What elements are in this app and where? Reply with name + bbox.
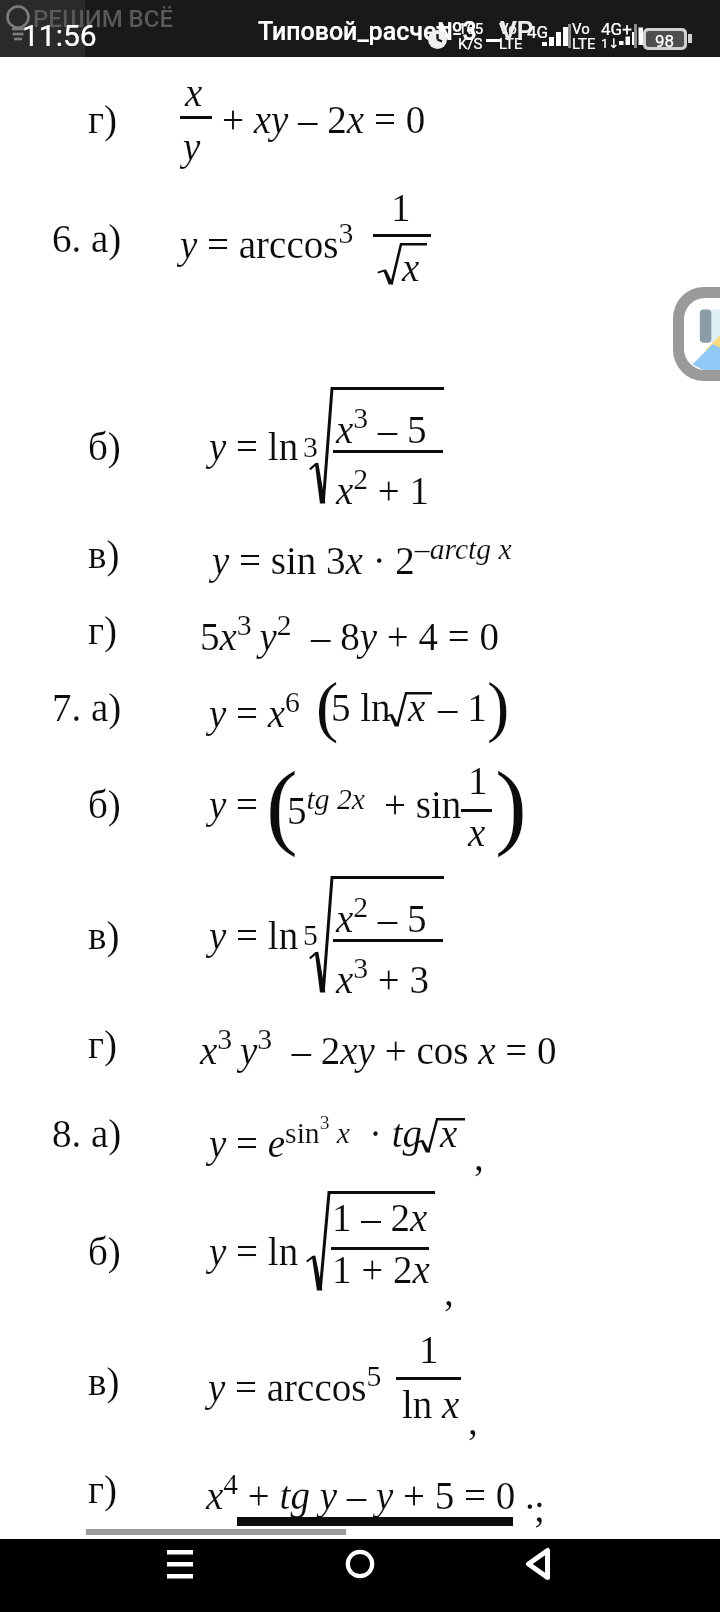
button[interactable]: Home <box>320 1539 400 1612</box>
staticText: 3 <box>303 431 318 464</box>
staticText: 11:56 <box>22 18 97 53</box>
staticText: в) <box>88 1360 120 1403</box>
staticText: , <box>444 1270 454 1313</box>
staticText: , <box>468 1399 478 1442</box>
staticText: г) <box>88 98 117 141</box>
staticText: + sin <box>384 783 462 826</box>
staticText: 5 ln <box>331 686 401 729</box>
staticText: б) <box>88 783 121 826</box>
staticText: в) <box>88 533 120 576</box>
staticText: б) <box>88 425 121 468</box>
staticText: 1 + 2x <box>332 1248 430 1291</box>
staticText: x <box>185 71 203 114</box>
staticText: x2 + 1 <box>336 463 430 512</box>
staticText: x <box>408 686 426 729</box>
staticText: 5tg 2x <box>287 783 365 832</box>
staticText: Типовой_расчет <box>258 17 449 46</box>
staticText: y = ln <box>209 914 299 957</box>
staticText: №3 <box>437 17 477 46</box>
staticText: 5 <box>303 919 318 952</box>
staticText: y = arccos3 <box>180 217 354 266</box>
staticText: y = sin 3x · 2–arctg x <box>212 533 512 582</box>
staticText: 5x3 y2 – 8y + 4 = 0 <box>200 609 500 658</box>
staticText: г) <box>88 609 117 652</box>
staticText: ln x <box>402 1383 460 1426</box>
staticText: + xy – 2x = 0 <box>222 98 426 141</box>
staticText: 1 <box>468 759 488 802</box>
staticText: Vo LTE <box>499 20 523 53</box>
staticText: VP <box>500 16 534 46</box>
staticText: 4G <box>527 22 549 42</box>
staticText: y = <box>209 783 268 826</box>
staticText: 1↓ <box>601 36 620 51</box>
staticText: б) <box>88 1230 121 1273</box>
staticText: ) <box>487 669 510 743</box>
staticText: y = ln <box>209 425 299 468</box>
staticText: ; <box>534 1487 545 1530</box>
button[interactable]: Back <box>500 1539 580 1612</box>
staticText: 8. а) <box>52 1112 122 1155</box>
staticText: ) <box>495 752 527 858</box>
staticText: , <box>474 1135 484 1178</box>
staticText: x3 – 5 <box>336 402 427 451</box>
staticText: y = ln <box>209 1230 299 1273</box>
staticText: y = arccos5 <box>208 1360 382 1409</box>
staticText: 165 K/S <box>458 20 484 53</box>
staticText: 1 <box>391 186 411 229</box>
staticText: г) <box>88 1468 117 1511</box>
staticText: x3 + 3 <box>336 952 430 1001</box>
staticText: Vo LTE <box>572 20 596 53</box>
staticText: x <box>468 811 486 854</box>
staticText: x2 – 5 <box>336 891 427 940</box>
staticText: в) <box>88 914 120 957</box>
staticText: – 1 <box>438 686 487 729</box>
staticText: 1 – 2x <box>332 1196 428 1239</box>
staticText: РЕШИМ ВСЁ <box>33 5 173 33</box>
staticText: 6. а) <box>52 217 122 260</box>
staticText: 98 <box>655 31 675 47</box>
staticText: 4G+ <box>601 19 632 39</box>
staticText: y <box>183 125 201 168</box>
staticText: ( <box>266 752 298 858</box>
staticText: x4 + tg y – y + 5 = 0 . <box>206 1468 535 1517</box>
staticText: г) <box>88 1023 117 1066</box>
staticText: · tg <box>369 1112 423 1155</box>
staticText: x <box>440 1112 458 1155</box>
staticText: y = x6 <box>209 686 300 735</box>
button[interactable]: Recent apps <box>140 1539 220 1612</box>
staticText: ( <box>316 669 339 743</box>
staticText: 7. а) <box>52 686 122 729</box>
staticText: x3 y3 – 2xy + cos x = 0 <box>200 1023 557 1072</box>
staticText: 1 <box>419 1328 439 1371</box>
staticText: y = esin3 x <box>209 1112 350 1165</box>
button[interactable]: Floating assistant <box>684 298 720 370</box>
staticText: x <box>402 246 420 289</box>
